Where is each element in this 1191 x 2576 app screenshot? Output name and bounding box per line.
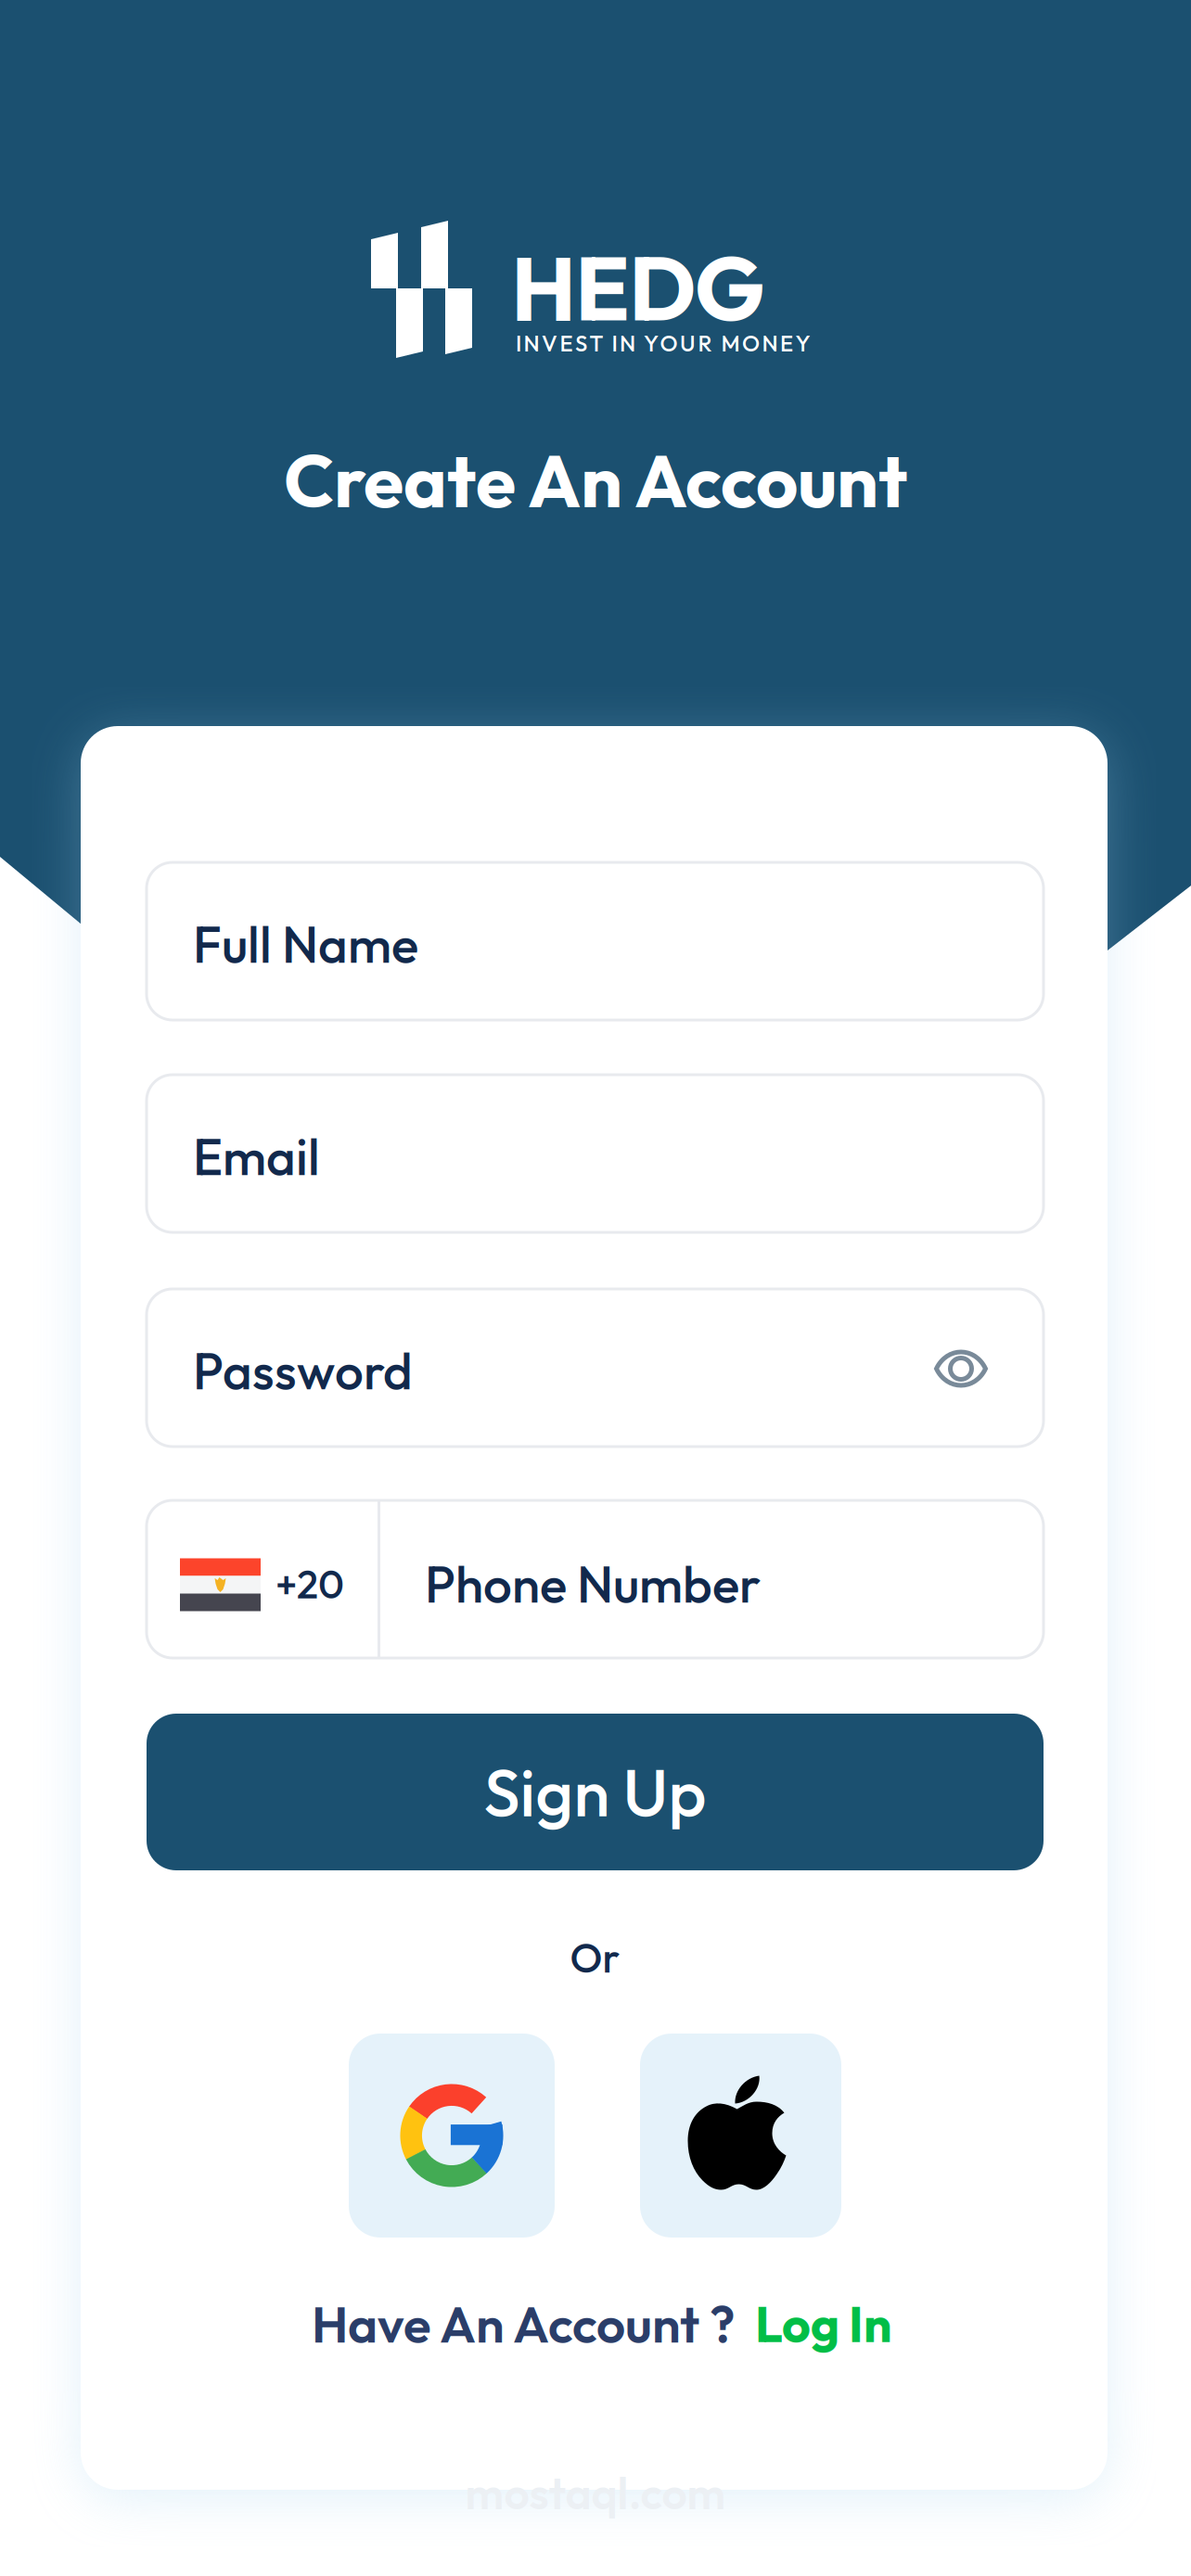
staticText: HEDG (511, 231, 764, 344)
staticText: Create An Account (284, 434, 907, 526)
button[interactable]: Have An Account ? (312, 2295, 905, 2353)
staticText: Sign Up (484, 1751, 706, 1833)
staticText: Or (570, 1932, 620, 1983)
button[interactable]: Sign Up (147, 1714, 1044, 1870)
button[interactable]: Sign up with Apple (640, 2034, 841, 2238)
button[interactable]: Password (147, 1289, 1044, 1447)
staticText: Full Name (193, 912, 418, 976)
staticText: Password (193, 1339, 413, 1403)
button[interactable]: +20 (147, 1500, 1044, 1658)
button[interactable]: Full Name (147, 862, 1044, 1020)
button[interactable]: Sign up with Google (349, 2034, 555, 2238)
button[interactable]: Email (147, 1075, 1044, 1232)
staticText: Have An Account ? (312, 2292, 735, 2356)
staticText: INVEST IN YOUR MONEY (516, 329, 810, 357)
staticText: Log In (755, 2293, 892, 2355)
staticText: mostaql.com (465, 2465, 726, 2521)
staticText: +20 (275, 1559, 344, 1609)
staticText: Email (193, 1124, 320, 1188)
staticText: Phone Number (425, 1552, 761, 1616)
